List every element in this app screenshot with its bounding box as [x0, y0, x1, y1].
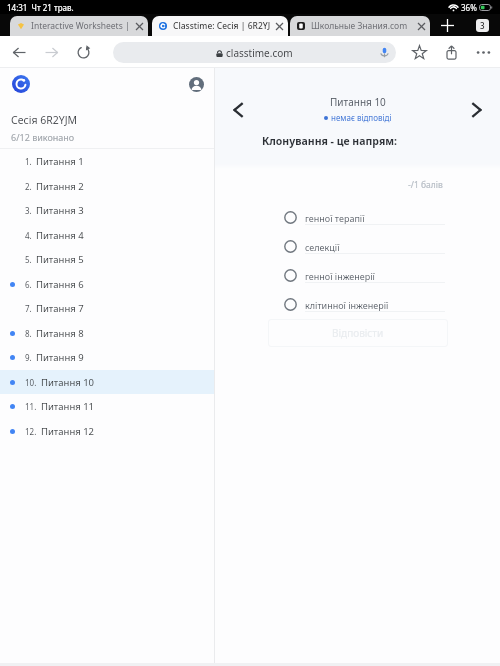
- staticText: немає відповіді: [331, 112, 392, 123]
- staticText: Сесія 6R2YJM: [11, 113, 78, 127]
- button[interactable]: classtime.com: [113, 42, 396, 63]
- button[interactable]: More options: [474, 43, 492, 61]
- staticText: Питання 2: [36, 180, 84, 193]
- button[interactable]: Close tab: [415, 20, 427, 32]
- staticText: 10.: [25, 377, 37, 388]
- staticText: Питання 1: [36, 155, 84, 168]
- staticText: 7.: [25, 303, 32, 314]
- button[interactable]: 1.: [0, 149, 214, 173]
- button[interactable]: Tab overview: [464, 14, 500, 36]
- staticText: Питання 12: [41, 425, 95, 438]
- button[interactable]: 2.: [0, 174, 214, 198]
- staticText: Питання 6: [36, 278, 84, 291]
- staticText: селекції: [305, 241, 340, 253]
- button[interactable]: Classtime: Сесія | 6R2YJ: [152, 16, 288, 36]
- staticText: Interactive Worksheets |: [31, 20, 131, 32]
- button[interactable]: Previous question: [215, 95, 261, 123]
- button[interactable]: New tab: [430, 14, 464, 36]
- staticText: Classtime: Сесія | 6R2YJ: [173, 20, 271, 32]
- button[interactable]: 6.: [0, 272, 214, 296]
- button[interactable]: Школьные Знания.com: [290, 16, 430, 36]
- staticText: генної терапії: [305, 212, 365, 224]
- staticText: 3: [480, 20, 485, 31]
- staticText: генної інженерії: [305, 270, 375, 282]
- button[interactable]: Share: [442, 43, 460, 61]
- button[interactable]: Voice search: [378, 46, 391, 59]
- button[interactable]: Back: [10, 43, 28, 61]
- staticText: Питання 11: [41, 400, 95, 413]
- button[interactable]: 5.: [0, 247, 214, 271]
- button[interactable]: Close tab: [273, 20, 285, 32]
- button[interactable]: Next question: [454, 95, 500, 123]
- staticText: 6/12 виконано: [11, 131, 75, 143]
- button[interactable]: Account: [186, 74, 206, 94]
- button[interactable]: 9.: [0, 345, 214, 369]
- button[interactable]: Reload: [74, 43, 92, 61]
- staticText: Питання 9: [36, 351, 84, 364]
- button[interactable]: Відповісти: [268, 319, 448, 347]
- staticText: Питання 5: [36, 253, 84, 266]
- staticText: Школьные Знания.com: [311, 20, 413, 32]
- button[interactable]: Close tab: [133, 20, 145, 32]
- staticText: 3.: [25, 205, 32, 216]
- staticText: 8.: [25, 328, 32, 339]
- staticText: Клонування - це напрям:: [262, 134, 397, 148]
- staticText: Питання 10: [41, 376, 95, 389]
- staticText: 12.: [25, 426, 37, 437]
- button[interactable]: 7.: [0, 296, 214, 320]
- button[interactable]: 11.: [0, 394, 214, 418]
- staticText: Питання 4: [36, 229, 84, 242]
- button[interactable]: 4.: [0, 223, 214, 247]
- staticText: 5.: [25, 254, 32, 265]
- button[interactable]: 12.: [0, 419, 214, 443]
- button[interactable]: 8.: [0, 321, 214, 345]
- staticText: Питання 7: [36, 302, 84, 315]
- staticText: 6.: [25, 279, 32, 290]
- button[interactable]: 3.: [0, 198, 214, 222]
- staticText: 11.: [25, 401, 37, 412]
- button[interactable]: генної інженерії: [284, 261, 445, 290]
- staticText: клітинної інженерії: [305, 299, 389, 311]
- button[interactable]: Classtime home: [9, 72, 33, 96]
- staticText: 2.: [25, 181, 32, 192]
- staticText: 4.: [25, 230, 32, 241]
- staticText: 36%: [461, 2, 477, 13]
- staticText: 1.: [25, 156, 32, 167]
- button[interactable]: селекції: [284, 232, 445, 261]
- staticText: 9.: [25, 352, 32, 363]
- button[interactable]: генної терапії: [284, 203, 445, 232]
- button[interactable]: Forward: [42, 43, 60, 61]
- staticText: classtime.com: [226, 46, 293, 60]
- staticText: Питання 8: [36, 327, 84, 340]
- staticText: Відповісти: [332, 326, 384, 340]
- staticText: 14:31 Чт 21 трав.: [7, 2, 74, 13]
- staticText: -/1 балів: [408, 179, 443, 191]
- button[interactable]: 10.: [0, 370, 214, 394]
- staticText: Питання 10: [330, 95, 386, 109]
- button[interactable]: клітинної інженерії: [284, 290, 445, 319]
- button[interactable]: Interactive Worksheets |: [10, 16, 148, 36]
- staticText: Питання 3: [36, 204, 84, 217]
- button[interactable]: Bookmark: [410, 43, 428, 61]
